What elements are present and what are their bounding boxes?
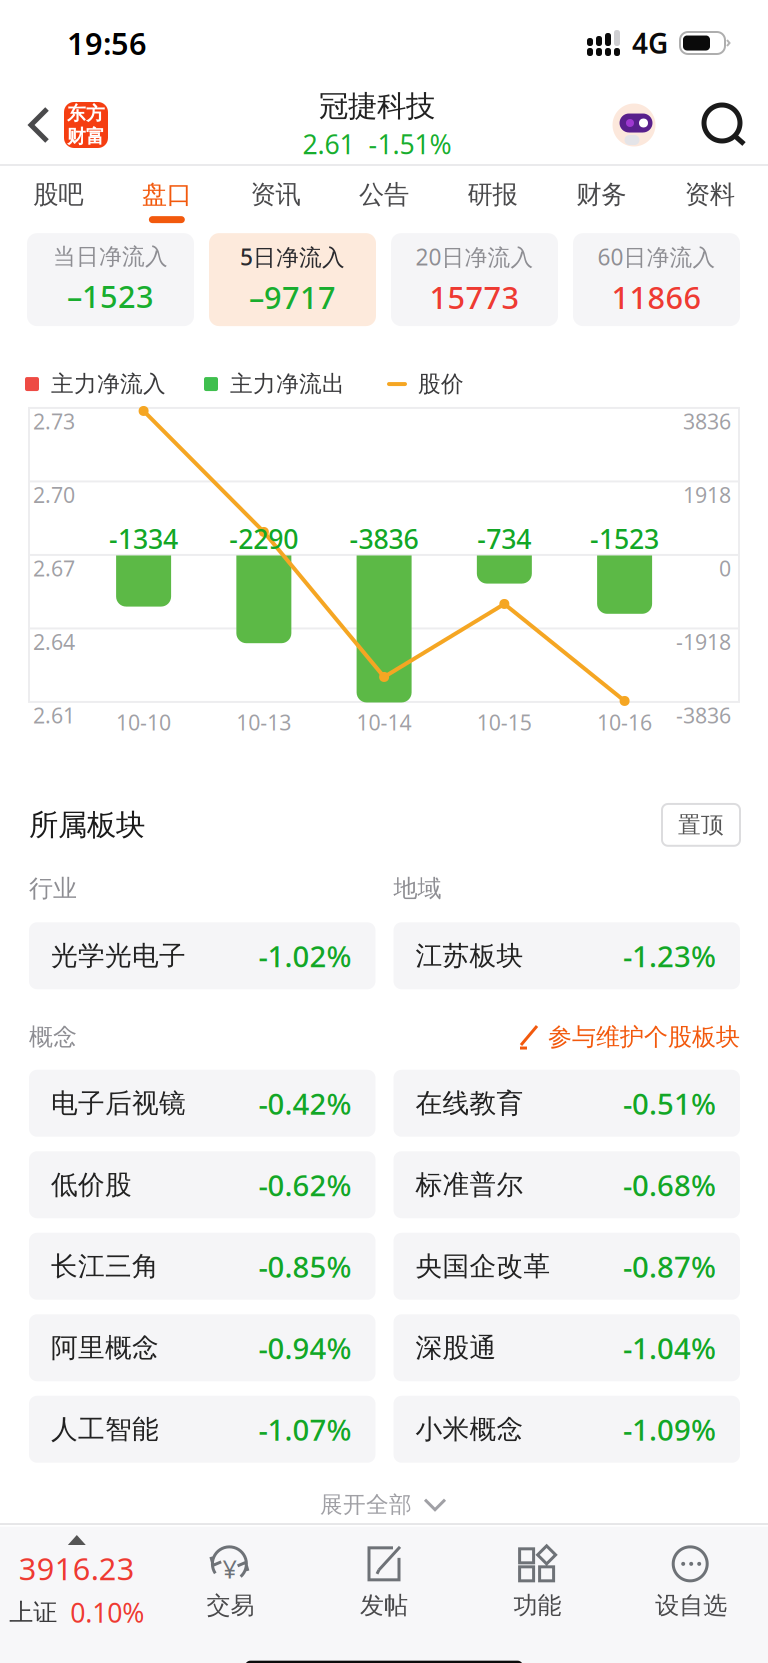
staticText: 1918 [683,480,731,509]
staticText: 光学光电子 [51,939,186,972]
staticText: 行业 [29,874,77,903]
staticText: 阿里概念 [51,1331,159,1364]
button[interactable]: 央国企改革 [393,1233,740,1300]
staticText: 电子后视镜 [51,1087,186,1120]
button[interactable]: Search [698,91,754,159]
staticText: -1523 [590,521,659,556]
staticText: 资讯 [250,179,300,210]
staticText: -0.62% [258,1165,351,1204]
staticText: 东方 [67,102,105,125]
staticText: 江苏板块 [415,939,523,972]
staticText: 0.10% [70,1595,144,1630]
button[interactable]: 公告 [330,166,438,232]
button[interactable]: 阿里概念 [29,1314,375,1381]
button[interactable]: 标准普尔 [393,1151,740,1218]
button[interactable]: 在线教育 [393,1070,740,1137]
staticText: 交易 [206,1591,254,1620]
button[interactable]: 展开全部 [0,1491,768,1519]
staticText: -1.51% [368,126,451,162]
staticText: 2.61 [302,126,354,162]
button[interactable]: Back [0,87,64,163]
staticText: 低价股 [51,1168,132,1201]
staticText: 当日净流入 [53,243,168,271]
staticText: 2.61 [33,701,75,729]
staticText: 2.73 [33,407,75,435]
button[interactable]: 60日净流入 [573,233,740,326]
staticText: 标准普尔 [415,1168,523,1201]
button[interactable]: ¥ [154,1545,307,1620]
button[interactable]: 资料 [655,166,764,232]
staticText: 11866 [611,277,701,317]
staticText: 地域 [393,874,441,903]
button[interactable]: 设自选 [614,1545,768,1620]
staticText: –9717 [249,277,336,317]
staticText: 2.64 [33,627,75,656]
staticText: 资料 [685,179,735,210]
staticText: 财务 [576,179,626,210]
staticText: 人工智能 [51,1413,159,1446]
button[interactable]: East Money [64,102,108,148]
staticText: 冠捷科技 [319,88,435,124]
staticText: 0 [719,554,731,582]
button[interactable]: 电子后视镜 [29,1070,375,1137]
staticText: -1.07% [258,1410,351,1449]
staticText: -1.02% [258,936,351,975]
staticText: 股吧 [33,179,83,210]
staticText: 2.67 [33,554,75,582]
button[interactable]: 股吧 [4,166,113,232]
button[interactable]: 参与维护个股板块 [517,1022,740,1052]
staticText: -0.68% [623,1165,716,1204]
staticText: -2290 [229,521,298,556]
button[interactable]: 深股通 [393,1314,740,1381]
staticText: -3836 [676,701,731,729]
staticText: -3836 [350,521,419,556]
button[interactable]: AI assistant [610,101,658,149]
staticText: 展开全部 [320,1491,412,1519]
staticText: 3916.23 [19,1548,135,1589]
staticText: 发帖 [360,1591,408,1620]
staticText: 长江三角 [51,1250,159,1283]
staticText: 60日净流入 [597,242,715,272]
staticText: 10-15 [477,708,532,736]
staticText: -0.85% [258,1247,351,1286]
staticText: 研报 [468,179,518,210]
button[interactable]: 发帖 [307,1545,461,1620]
staticText: 功能 [514,1591,562,1620]
staticText: 主力净流出 [230,370,345,398]
staticText: 19:56 [67,23,147,63]
staticText: 5日净流入 [240,242,345,272]
staticText: -0.51% [623,1084,716,1123]
staticText: 设自选 [655,1591,727,1620]
button[interactable]: 长江三角 [29,1233,375,1300]
staticText: -1918 [676,627,731,656]
button[interactable]: 研报 [438,166,547,232]
staticText: 小米概念 [415,1413,523,1446]
button[interactable]: 江苏板块 [393,922,740,989]
staticText: 股价 [418,370,464,398]
staticText: 财富 [67,125,105,148]
staticText: 上证 [9,1598,57,1627]
button[interactable]: 人工智能 [29,1396,375,1463]
staticText: -1334 [109,521,178,556]
button[interactable]: 当日净流入 [27,233,194,326]
button[interactable]: 小米概念 [393,1396,740,1463]
button[interactable]: 资讯 [221,166,330,232]
button[interactable]: 功能 [461,1545,614,1620]
button[interactable]: 5日净流入 [209,233,376,326]
button[interactable]: 盘口 [113,166,221,232]
staticText: –1523 [67,276,154,316]
button[interactable]: 低价股 [29,1151,375,1218]
staticText: 2.70 [33,480,75,509]
staticText: 所属板块 [29,807,145,843]
button[interactable]: 财务 [547,166,655,232]
button[interactable]: 3916.23 [0,1535,154,1630]
button[interactable]: 置顶 [662,804,740,846]
staticText: -1.04% [623,1328,716,1367]
staticText: -1.09% [623,1410,716,1449]
button[interactable]: 20日净流入 [391,233,558,326]
staticText: 公告 [359,179,409,210]
button[interactable]: 光学光电子 [29,922,375,989]
staticText: -0.87% [623,1247,716,1286]
staticText: -1.23% [623,936,716,975]
staticText: 15773 [429,277,519,317]
